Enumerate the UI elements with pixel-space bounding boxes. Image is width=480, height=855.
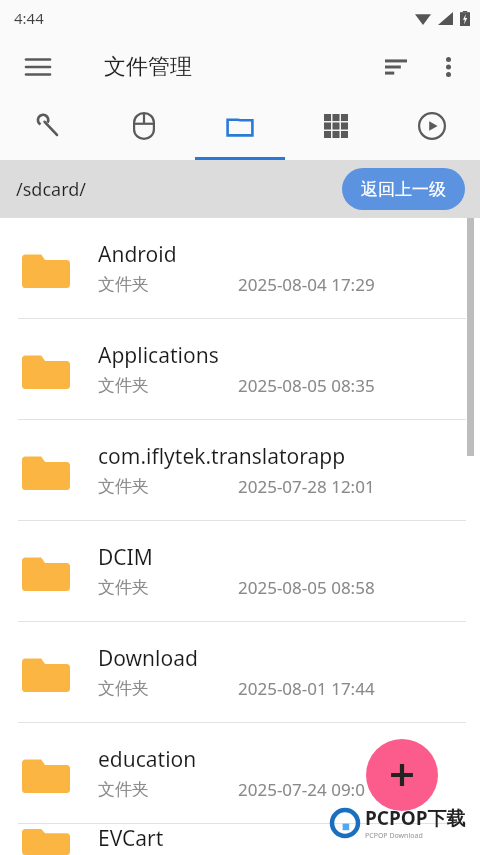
staticText: PCPOP Download [365,831,423,841]
button[interactable]: Add [366,739,438,811]
button[interactable]: Media [384,98,480,160]
button[interactable]: Android [0,218,480,318]
button[interactable]: Remote [96,98,192,160]
staticText: EVCart [98,824,164,853]
staticText: /sdcard/ [16,177,86,202]
staticText: 文件夹 [98,476,170,497]
staticText: 文件管理 [104,53,192,81]
staticText: Applications [98,341,219,370]
button[interactable]: com.iflytek.translatorapp [0,420,480,520]
staticText: 文件夹 [98,577,170,598]
staticText: 返回上一级 [361,179,446,200]
staticText: 文件夹 [98,779,170,800]
staticText: 2025-08-05 08:35 [238,374,375,397]
staticText: 2025-08-04 17:29 [238,273,375,296]
staticText: DCIM [98,543,153,572]
button[interactable]: DCIM [0,521,480,621]
staticText: 文件夹 [98,274,170,295]
staticText: 4:44 [14,8,44,28]
staticText: 2025-07-24 09:0 [238,778,365,801]
button[interactable]: Files [192,98,288,160]
staticText: 2025-08-01 17:44 [238,677,375,700]
button[interactable]: Tools [0,98,96,160]
staticText: 2025-07-28 12:01 [238,475,375,498]
button[interactable]: EVCart [0,824,480,855]
button[interactable]: Menu [12,41,64,93]
staticText: Android [98,240,177,269]
button[interactable]: Download [0,622,480,722]
button[interactable]: education [0,723,480,823]
staticText: 文件夹 [98,375,170,396]
staticText: 2025-08-05 08:58 [238,576,375,599]
button[interactable]: Apps [288,98,384,160]
button[interactable]: 返回上一级 [342,168,465,210]
button[interactable]: More options [422,41,474,93]
staticText: PCPOP下载 [365,805,466,831]
staticText: com.iflytek.translatorapp [98,442,346,471]
staticText: 文件夹 [98,678,170,699]
staticText: education [98,745,197,774]
button[interactable]: Applications [0,319,480,419]
button[interactable]: Sort [370,41,422,93]
staticText: Download [98,644,198,673]
